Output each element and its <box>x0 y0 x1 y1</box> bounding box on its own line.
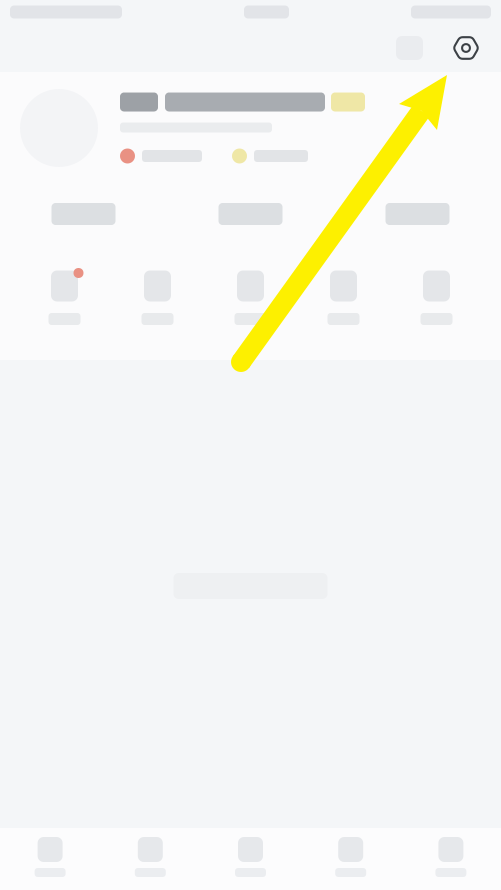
button[interactable] <box>390 244 483 360</box>
button[interactable] <box>297 244 390 360</box>
button[interactable] <box>0 72 501 184</box>
button[interactable] <box>301 828 401 890</box>
button[interactable] <box>200 828 301 890</box>
button[interactable] <box>0 828 100 890</box>
button[interactable] <box>167 184 334 244</box>
button[interactable] <box>100 828 200 890</box>
button[interactable] <box>204 244 297 360</box>
button[interactable] <box>18 244 111 360</box>
button[interactable]: Messages <box>388 28 431 68</box>
button[interactable] <box>334 184 501 244</box>
button[interactable] <box>111 244 204 360</box>
button[interactable] <box>401 828 501 890</box>
button[interactable]: Settings <box>445 27 487 69</box>
button[interactable] <box>0 184 167 244</box>
